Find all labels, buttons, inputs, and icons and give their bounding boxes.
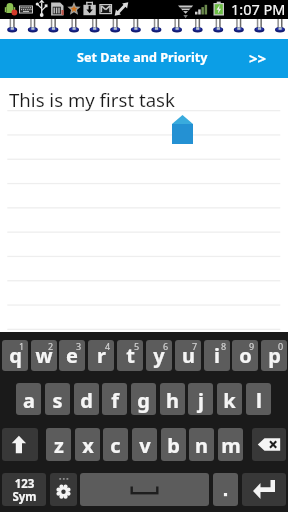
button[interactable]: Shift [2, 428, 38, 461]
button[interactable]: Enter [242, 473, 286, 506]
button[interactable]: m [218, 428, 243, 461]
button[interactable]: k [217, 383, 242, 415]
staticText: p [268, 342, 281, 369]
staticText: e [66, 342, 78, 369]
button[interactable]: g [131, 383, 156, 415]
button[interactable]: This is my first task [0, 78, 288, 332]
staticText: This is my first task [9, 87, 175, 112]
staticText: a [23, 387, 35, 414]
staticText: f [111, 387, 119, 414]
staticText: j [198, 387, 204, 414]
button[interactable]: 6 [146, 340, 172, 371]
staticText: s [52, 387, 63, 414]
button[interactable]: 123 Sym [2, 473, 46, 506]
button[interactable]: 8 [204, 340, 230, 371]
button[interactable]: 7 [175, 340, 201, 371]
staticText: b [167, 432, 180, 459]
staticText: q [9, 342, 22, 369]
staticText: t [126, 342, 135, 369]
button[interactable]: j [188, 383, 213, 415]
button[interactable]: 5 [117, 340, 143, 371]
staticText: m [221, 432, 241, 459]
button[interactable]: Set Date and Priority [0, 39, 288, 78]
button[interactable]: l [246, 383, 271, 415]
button[interactable]: Space [80, 473, 209, 506]
staticText: 5 [134, 340, 140, 352]
button[interactable]: 9 [232, 340, 258, 371]
button[interactable]: c [103, 428, 128, 461]
staticText: 1:07 PM [231, 0, 286, 18]
button[interactable]: n [189, 428, 214, 461]
button[interactable]: 1 [2, 340, 28, 371]
staticText: 8 [221, 340, 227, 352]
staticText: x [82, 432, 94, 459]
button[interactable]: f [102, 383, 127, 415]
staticText: n [195, 432, 208, 459]
staticText: i [214, 342, 220, 369]
button[interactable]: 4 [88, 340, 114, 371]
staticText: u [182, 342, 195, 369]
button[interactable]: x [75, 428, 100, 461]
staticText: r [97, 342, 106, 369]
button[interactable]: Settings [50, 473, 77, 506]
button[interactable]: v [132, 428, 157, 461]
button[interactable]: Next [238, 39, 288, 78]
staticText: 7 [192, 340, 198, 352]
staticText: k [223, 387, 236, 414]
button[interactable]: d [74, 383, 99, 415]
staticText: Set Date and Priority [77, 49, 208, 66]
staticText: 1 [19, 340, 25, 352]
staticText: 2 [48, 340, 54, 352]
button[interactable]: 0 [261, 340, 287, 371]
staticText: d [80, 387, 93, 414]
staticText: y [153, 342, 165, 369]
staticText: 4 [105, 340, 111, 352]
staticText: 0 [278, 340, 284, 352]
button[interactable]: 3 [59, 340, 85, 371]
staticText: z [54, 432, 64, 459]
staticText: h [166, 387, 179, 414]
staticText: >> [249, 48, 267, 68]
button[interactable]: 2 [31, 340, 57, 371]
button[interactable]: b [161, 428, 186, 461]
button[interactable]: s [45, 383, 70, 415]
staticText: w [35, 342, 53, 369]
staticText: c [110, 432, 121, 459]
staticText: 9 [249, 340, 255, 352]
staticText: o [239, 342, 252, 369]
staticText: 3 [76, 340, 82, 352]
staticText: 6 [163, 340, 169, 352]
staticText: g [137, 387, 150, 414]
button[interactable]: z [46, 428, 71, 461]
button[interactable]: Backspace [252, 428, 286, 461]
staticText: 123 Sym [12, 476, 37, 505]
button[interactable]: a [16, 383, 41, 415]
button[interactable]: h [160, 383, 185, 415]
staticText: v [139, 432, 151, 459]
staticText: l [256, 387, 262, 414]
button[interactable]: Period [213, 473, 238, 506]
